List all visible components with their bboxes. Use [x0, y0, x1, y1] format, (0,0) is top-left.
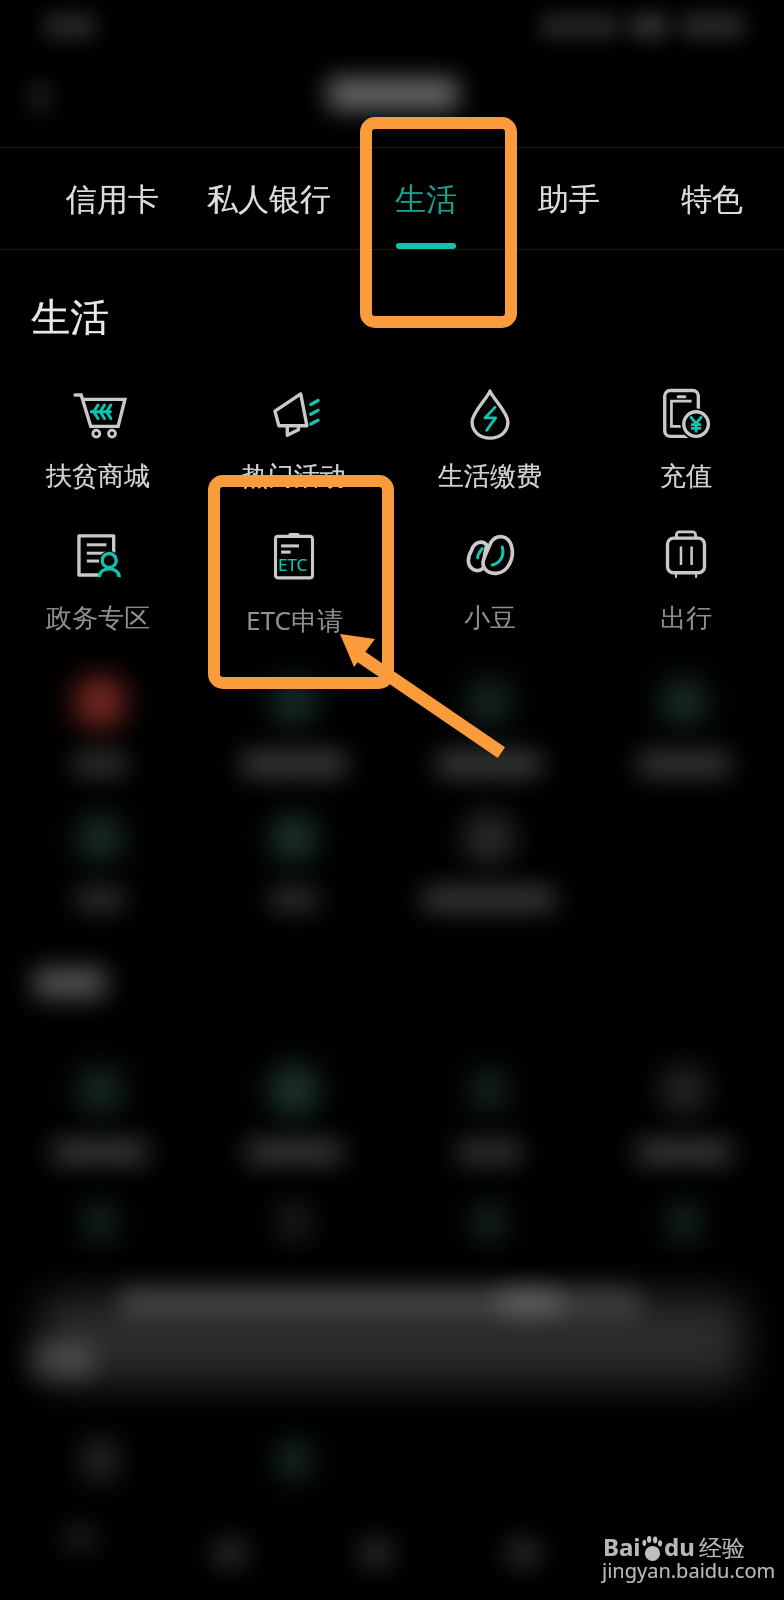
button[interactable]: 政务专区 [0, 528, 196, 644]
button[interactable]: 扶贫商城 [0, 386, 196, 502]
button[interactable]: ETC申请 [196, 528, 392, 644]
staticText: 私人银行 [207, 180, 331, 219]
button[interactable]: 充值 [588, 386, 784, 502]
button[interactable]: 助手 [499, 148, 639, 249]
staticText: jingyan.baidu.com [602, 1557, 776, 1584]
staticText: 充值 [660, 460, 712, 493]
staticText: 小豆 [464, 602, 516, 635]
button[interactable]: 小豆 [392, 528, 588, 644]
staticText: 生活 [31, 293, 109, 342]
staticText: Bai [603, 1530, 641, 1563]
button[interactable]: 热门活动 [196, 386, 392, 502]
button[interactable]: 出行 [588, 528, 784, 644]
button[interactable]: 信用卡 [42, 148, 182, 249]
staticText: 特色 [681, 180, 743, 219]
button[interactable]: 生活 [356, 148, 496, 249]
staticText: 热门活动 [242, 460, 346, 493]
staticText: 生活 [395, 180, 457, 219]
button[interactable]: 私人银行 [199, 148, 339, 249]
staticText: du [664, 1530, 695, 1563]
staticText: 扶贫商城 [46, 460, 150, 493]
staticText: ETC申请 [246, 602, 343, 638]
staticText: 出行 [660, 602, 712, 635]
staticText: ETC [278, 553, 308, 576]
staticText: 生活缴费 [438, 460, 542, 493]
staticText: 政务专区 [46, 602, 150, 635]
staticText: 经验 [699, 1534, 745, 1563]
staticText: 信用卡 [66, 180, 159, 219]
staticText: 助手 [538, 180, 600, 219]
button[interactable]: 特色 [642, 148, 782, 249]
button[interactable]: 生活缴费 [392, 386, 588, 502]
